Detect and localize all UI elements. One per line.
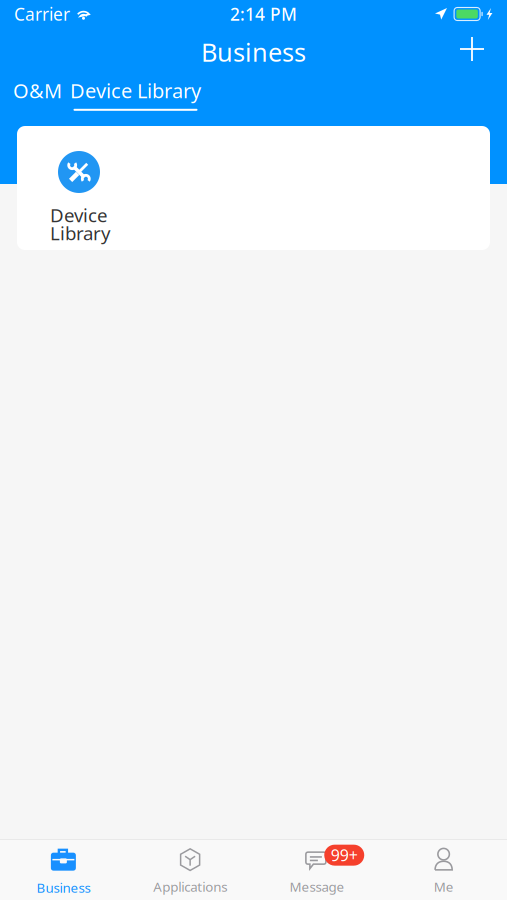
staticText: Carrier	[14, 2, 70, 25]
button[interactable]: Applications	[127, 839, 254, 900]
staticText: Device Library	[70, 77, 201, 104]
staticText: Device	[50, 203, 108, 227]
staticText: Me	[434, 878, 454, 895]
staticText: 99+	[331, 844, 358, 866]
button[interactable]: Add	[450, 27, 494, 71]
staticText: Business	[36, 879, 90, 896]
staticText: O&M	[13, 77, 62, 104]
button[interactable]: Message	[253, 839, 380, 900]
button[interactable]: Me	[380, 839, 507, 900]
button[interactable]: Business	[0, 838, 127, 900]
staticText: Library	[50, 221, 111, 245]
staticText: Business	[201, 35, 306, 69]
staticText: 2:14 PM	[230, 2, 297, 25]
button[interactable]: Device Library	[70, 77, 201, 117]
staticText: Message	[289, 878, 344, 895]
button[interactable]: Device	[17, 126, 490, 250]
staticText: Applications	[153, 878, 227, 895]
button[interactable]: O&M	[0, 77, 70, 117]
